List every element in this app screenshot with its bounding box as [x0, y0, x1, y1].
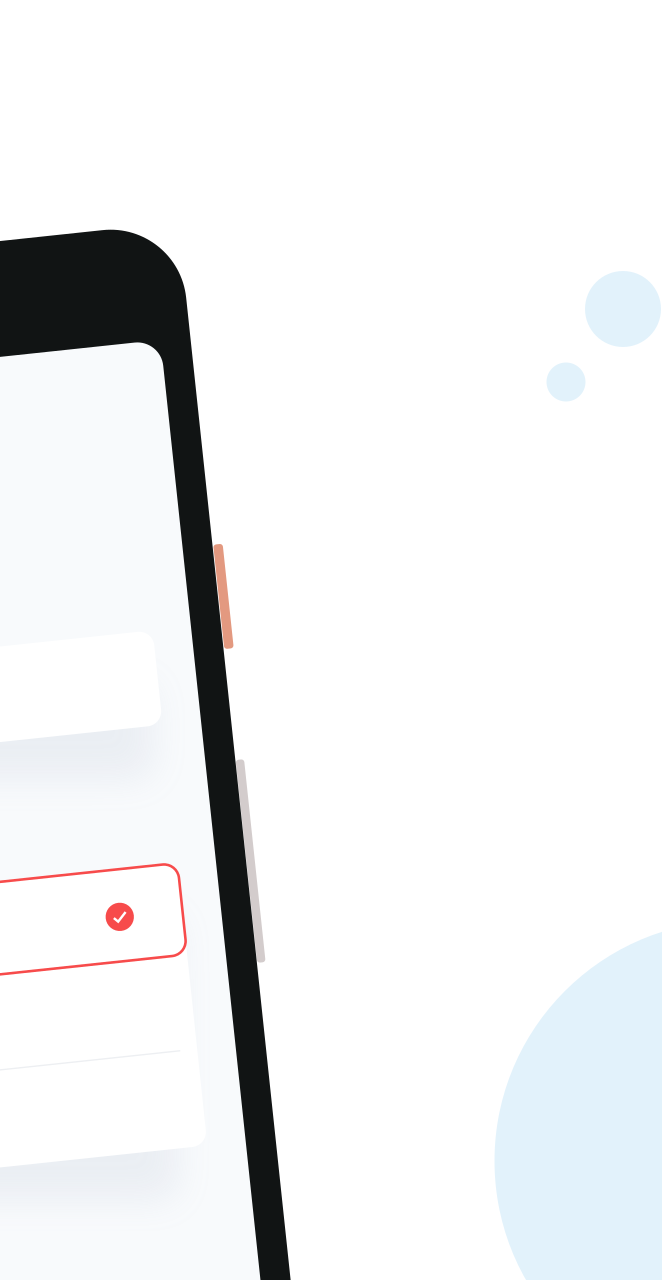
- button[interactable]: [0, 885, 190, 977]
- button[interactable]: [0, 651, 190, 746]
